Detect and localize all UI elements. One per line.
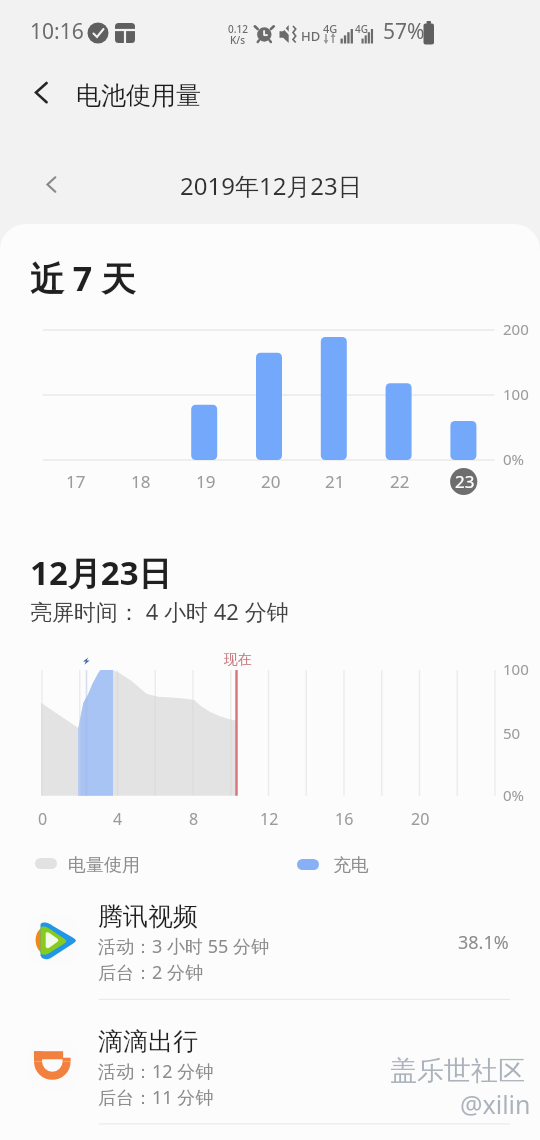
staticText: 100: [503, 659, 529, 679]
staticText: 0: [38, 808, 48, 830]
staticText: 16: [335, 808, 354, 830]
staticText: 17: [66, 470, 86, 493]
staticText: 23: [455, 470, 475, 493]
staticText: 4G: [323, 21, 338, 36]
staticText: 滴滴出行: [98, 1026, 198, 1057]
staticText: 100: [503, 384, 529, 404]
staticText: 12月23日: [30, 550, 172, 595]
staticText: 后台：2 分钟: [98, 960, 203, 985]
staticText: 8: [189, 808, 199, 830]
staticText: 0.12: [228, 22, 248, 36]
staticText: 充电: [333, 854, 369, 877]
staticText: 12: [260, 808, 279, 830]
staticText: 18: [131, 470, 151, 493]
button[interactable]: 腾讯视频: [0, 890, 540, 1000]
button[interactable]: Previous day: [30, 163, 72, 205]
staticText: 20: [261, 470, 281, 493]
staticText: 200: [503, 319, 529, 339]
staticText: 2019年12月23日: [180, 169, 362, 202]
staticText: 近 7 天: [30, 255, 136, 301]
staticText: 4G: [355, 22, 368, 36]
staticText: 10:16: [30, 17, 84, 46]
staticText: 腾讯视频: [98, 901, 198, 932]
staticText: 21: [325, 470, 345, 493]
staticText: 0%: [503, 449, 525, 469]
staticText: 电池使用量: [76, 80, 201, 111]
staticText: 50: [503, 723, 521, 743]
staticText: K/s: [230, 33, 246, 47]
staticText: 22: [390, 470, 410, 493]
staticText: 电量使用: [68, 854, 140, 877]
staticText: 活动：3 小时 55 分钟: [98, 934, 269, 959]
button[interactable]: 滴滴出行: [0, 1015, 540, 1125]
staticText: @xilin: [460, 1087, 531, 1121]
staticText: 活动：12 分钟: [98, 1059, 214, 1084]
button[interactable]: Back: [19, 70, 63, 114]
staticText: 57%: [383, 17, 425, 46]
staticText: HD: [301, 27, 321, 45]
staticText: 盖乐世社区: [390, 1054, 525, 1088]
staticText: 亮屏时间： 4 小时 42 分钟: [30, 596, 289, 626]
staticText: 后台：11 分钟: [98, 1085, 214, 1110]
staticText: 38.1%: [458, 930, 509, 955]
staticText: 0%: [503, 785, 525, 805]
staticText: 19: [196, 470, 216, 493]
staticText: 现在: [224, 651, 252, 669]
staticText: 20: [411, 808, 430, 830]
staticText: 4: [113, 808, 123, 830]
